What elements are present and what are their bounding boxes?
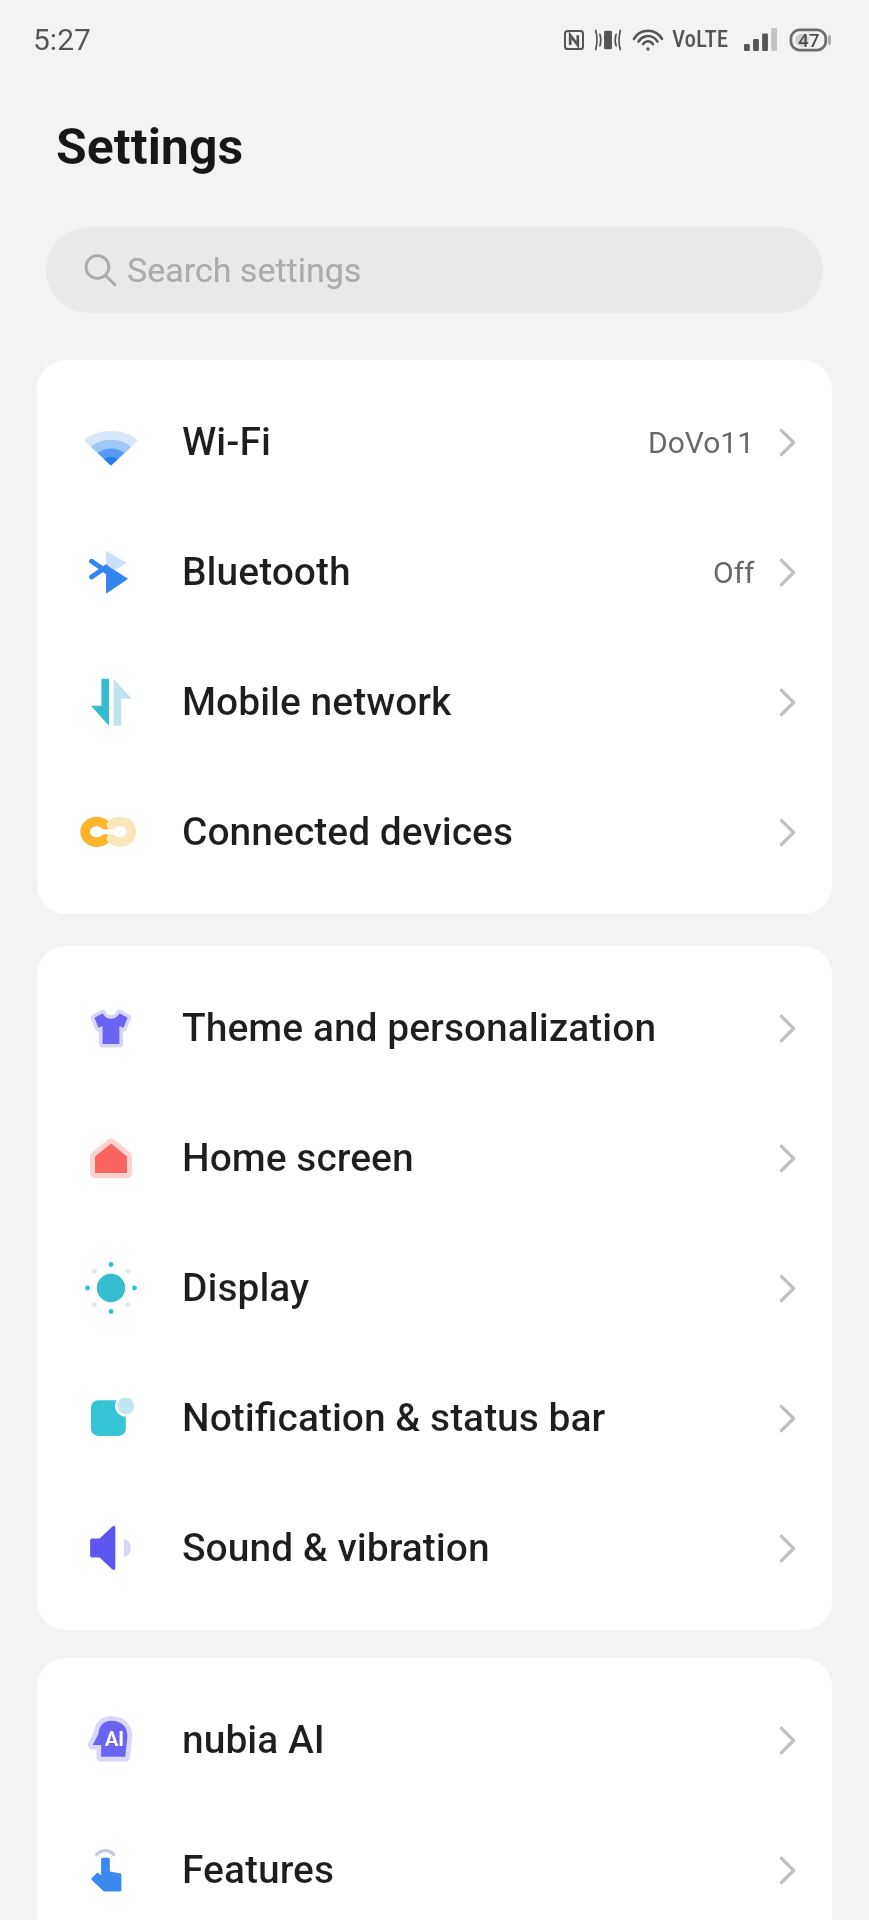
staticText: AI [105, 1727, 124, 1750]
staticText: Wi-Fi [182, 419, 271, 465]
staticText: Display [182, 1265, 310, 1311]
button[interactable]: Display [37, 1223, 832, 1353]
staticText: Notification & status bar [182, 1395, 606, 1441]
button[interactable]: AI [37, 1675, 832, 1805]
button[interactable]: Wi-Fi [37, 377, 832, 507]
button[interactable]: Sound & vibration [37, 1483, 832, 1613]
button[interactable]: Connected devices [37, 767, 832, 897]
staticText: Theme and personalization [182, 1005, 657, 1051]
button[interactable]: Theme and personalization [37, 963, 832, 1093]
button[interactable]: Home screen [37, 1093, 832, 1223]
staticText: Connected devices [182, 809, 514, 855]
staticText: Features [182, 1847, 335, 1893]
staticText: Settings [56, 118, 244, 177]
button[interactable]: Notification & status bar [37, 1353, 832, 1483]
button[interactable]: Mobile network [37, 637, 832, 767]
staticText: 47 [798, 29, 820, 51]
staticText: VoLTE [672, 26, 728, 53]
staticText: Home screen [182, 1135, 414, 1181]
staticText: Search settings [127, 250, 362, 290]
button[interactable]: Search settings [46, 227, 823, 313]
staticText: Off [713, 555, 755, 590]
staticText: Bluetooth [182, 549, 351, 595]
staticText: DoVo11 [648, 425, 755, 460]
staticText: nubia AI [182, 1717, 325, 1763]
button[interactable]: Bluetooth [37, 507, 832, 637]
button[interactable]: Features [37, 1805, 832, 1920]
staticText: Mobile network [182, 679, 452, 725]
staticText: Sound & vibration [182, 1525, 490, 1571]
staticText: 5:27 [33, 22, 91, 57]
